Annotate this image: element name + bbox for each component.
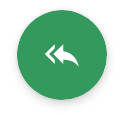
button[interactable]: Reply all (17, 10, 107, 100)
